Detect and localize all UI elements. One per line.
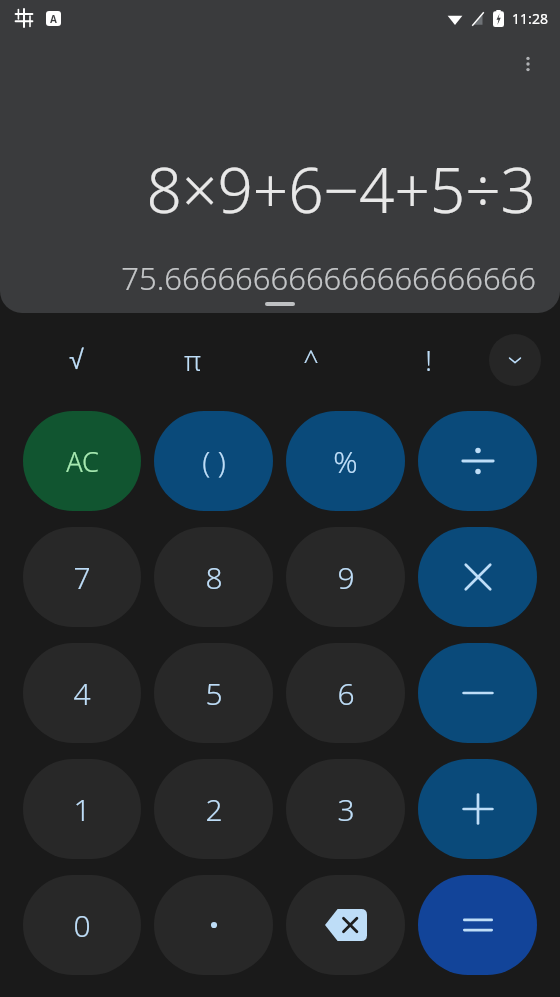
staticText: 9 (337, 557, 355, 598)
staticText: 6 (337, 673, 355, 714)
staticText: 5 (205, 673, 223, 714)
button[interactable]: π (162, 330, 222, 390)
button[interactable]: 9 (286, 527, 405, 627)
staticText: ! (425, 342, 432, 379)
button[interactable]: Decimal point (154, 875, 273, 975)
staticText: 3 (337, 789, 355, 830)
button[interactable]: % (286, 411, 405, 511)
staticText: 4 (73, 673, 91, 714)
button[interactable]: 5 (154, 643, 273, 743)
staticText: ( ) (202, 442, 226, 481)
staticText: π (184, 342, 201, 379)
staticText: A (50, 12, 57, 26)
button[interactable]: Collapse (489, 334, 541, 386)
button[interactable]: Multiply (418, 527, 537, 627)
staticText: 75.666666666666666666666 (121, 257, 536, 299)
button[interactable]: 6 (286, 643, 405, 743)
button[interactable]: Divide (418, 411, 537, 511)
staticText: √ (69, 345, 84, 375)
button[interactable]: 2 (154, 759, 273, 859)
button[interactable]: 4 (23, 643, 141, 743)
staticText: 8 (205, 557, 223, 598)
button[interactable]: Add (418, 759, 537, 859)
button[interactable]: 1 (23, 759, 141, 859)
button[interactable]: 7 (23, 527, 141, 627)
button[interactable]: 3 (286, 759, 405, 859)
staticText: ^ (303, 342, 319, 379)
button[interactable]: √ (46, 330, 106, 390)
button[interactable]: Backspace (286, 875, 405, 975)
button[interactable]: 0 (23, 875, 141, 975)
button[interactable]: AC (23, 411, 141, 511)
staticText: % (333, 441, 358, 482)
button[interactable]: Equals (418, 875, 537, 975)
button[interactable]: ( ) (154, 411, 273, 511)
staticText: 1 (73, 789, 91, 830)
staticText: 2 (205, 789, 223, 830)
button[interactable]: ^ (281, 330, 341, 390)
button[interactable]: 8 (154, 527, 273, 627)
button[interactable]: Subtract (418, 643, 537, 743)
button[interactable]: More options (504, 40, 552, 88)
staticText: AC (66, 443, 99, 480)
staticText: 7 (73, 557, 91, 598)
staticText: 8×9+6−4+5÷3 (146, 147, 536, 231)
staticText: 11:28 (512, 9, 548, 28)
button[interactable]: ! (398, 330, 458, 390)
staticText: 0 (73, 905, 91, 946)
